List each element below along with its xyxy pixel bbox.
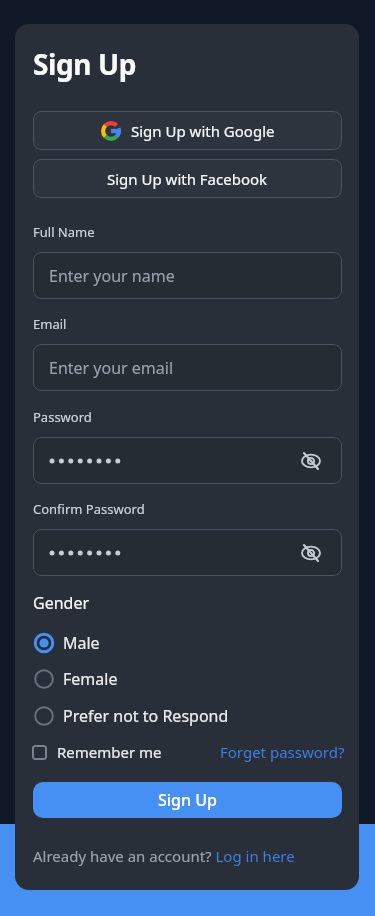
staticText: Gender (33, 592, 90, 614)
button[interactable]: Prefer not to Respond (33, 702, 229, 730)
staticText: Forget password? (220, 742, 345, 762)
button[interactable]: Enter your name (33, 252, 342, 299)
button[interactable] (33, 437, 342, 484)
button[interactable]: Male (33, 629, 100, 657)
button[interactable]: Already have an account? Log in here (33, 846, 295, 866)
staticText: Female (63, 668, 118, 690)
button[interactable]: Sign Up with Facebook (33, 159, 342, 198)
staticText: Sign Up (158, 789, 217, 811)
staticText: Remember me (57, 742, 162, 762)
button[interactable] (33, 529, 342, 576)
staticText: Confirm Password (33, 500, 145, 518)
staticText: Sign Up (33, 45, 137, 83)
button[interactable]: Female (33, 665, 118, 693)
button[interactable]: Enter your email (33, 344, 342, 391)
button[interactable]: Remember me (32, 738, 162, 766)
button[interactable]: Sign Up with Google (33, 111, 342, 150)
staticText: Prefer not to Respond (63, 705, 229, 727)
staticText: Male (63, 632, 100, 654)
staticText: Password (33, 408, 92, 426)
button[interactable]: Sign Up (33, 782, 342, 818)
staticText: Full Name (33, 223, 95, 241)
staticText: Sign Up with Google (131, 121, 275, 141)
staticText: Enter your name (49, 265, 175, 287)
staticText: Email (33, 315, 67, 333)
staticText: Sign Up with Facebook (107, 169, 268, 189)
staticText: Enter your email (49, 357, 174, 379)
button[interactable]: Forget password? (220, 738, 345, 766)
